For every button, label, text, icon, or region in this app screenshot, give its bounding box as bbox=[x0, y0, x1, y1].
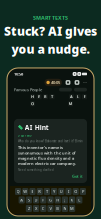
staticText: A bbox=[70, 94, 73, 99]
staticText: S bbox=[28, 197, 30, 203]
staticText: R bbox=[38, 189, 41, 194]
staticText: L bbox=[77, 94, 79, 99]
button[interactable]: L bbox=[76, 196, 82, 203]
staticText: G bbox=[49, 197, 52, 203]
staticText: E bbox=[83, 94, 85, 99]
button[interactable]: Z bbox=[26, 205, 32, 212]
button[interactable]: Q bbox=[15, 188, 21, 195]
staticText: C bbox=[42, 206, 45, 211]
button[interactable]: Got it bbox=[72, 174, 83, 179]
button[interactable]: K bbox=[69, 196, 75, 203]
button[interactable]: N bbox=[62, 205, 68, 212]
button[interactable]: S bbox=[26, 196, 32, 203]
staticText: V bbox=[49, 206, 51, 211]
staticText: L bbox=[78, 197, 80, 203]
staticText: W bbox=[23, 189, 27, 194]
staticText: H bbox=[31, 94, 34, 99]
staticText: U bbox=[60, 189, 63, 194]
button[interactable]: A bbox=[19, 196, 25, 203]
button[interactable]: C bbox=[40, 205, 46, 212]
staticText: Need something clarified bbox=[18, 168, 54, 172]
button[interactable]: More options bbox=[83, 79, 87, 85]
staticText: 10:58 bbox=[14, 71, 23, 77]
staticText: 3 LETTERS bbox=[18, 134, 31, 137]
button[interactable]: T bbox=[44, 188, 50, 195]
staticText: AI Hint bbox=[25, 123, 49, 132]
button[interactable]: V bbox=[47, 205, 54, 212]
button[interactable]: D bbox=[33, 196, 39, 203]
staticText: F bbox=[42, 197, 44, 203]
staticText: D bbox=[35, 197, 38, 203]
staticText: T bbox=[46, 189, 48, 194]
staticText: J bbox=[64, 197, 65, 203]
button[interactable]: E bbox=[29, 188, 36, 195]
staticText: Got it bbox=[72, 174, 83, 179]
staticText: Z bbox=[28, 206, 30, 211]
button[interactable]: X bbox=[33, 205, 39, 212]
button[interactable]: O bbox=[73, 188, 79, 195]
button[interactable]: F bbox=[40, 196, 46, 203]
staticText: This inventor's name is synonymous with … bbox=[18, 145, 76, 166]
staticText: A bbox=[20, 197, 23, 203]
button[interactable]: Share bbox=[74, 79, 80, 85]
staticText: Y bbox=[53, 189, 55, 194]
staticText: M bbox=[70, 206, 74, 211]
staticText: Q bbox=[17, 189, 20, 194]
staticText: Famous People bbox=[14, 87, 42, 92]
button[interactable]: G bbox=[47, 196, 54, 203]
staticText: R bbox=[44, 94, 47, 99]
staticText: I bbox=[68, 189, 69, 194]
button[interactable]: J bbox=[62, 196, 68, 203]
staticText: H bbox=[56, 197, 59, 203]
button[interactable]: M bbox=[69, 205, 75, 212]
button[interactable]: H bbox=[55, 196, 61, 203]
button[interactable]: W bbox=[22, 188, 28, 195]
staticText: O bbox=[74, 189, 77, 194]
staticText: M bbox=[68, 101, 72, 106]
staticText: N bbox=[63, 206, 66, 211]
staticText: T bbox=[51, 94, 53, 99]
staticText: you a nudge. bbox=[11, 41, 89, 57]
staticText: SMART TEXTS bbox=[33, 14, 68, 21]
button[interactable]: Y bbox=[51, 188, 57, 195]
staticText: B bbox=[56, 206, 59, 211]
staticText: 40:05 bbox=[51, 80, 60, 85]
staticText: Stuck? AI gives bbox=[4, 23, 97, 39]
button[interactable]: R bbox=[37, 188, 43, 195]
button[interactable]: P bbox=[80, 188, 86, 195]
button[interactable]: Hint bbox=[65, 79, 71, 85]
button[interactable]: U bbox=[58, 188, 64, 195]
staticText: E bbox=[38, 94, 40, 99]
staticText: E bbox=[31, 189, 33, 194]
staticText: Who do you know? Elaborate and level it?… bbox=[18, 139, 83, 143]
staticText: O bbox=[31, 101, 34, 106]
staticText: K bbox=[71, 197, 74, 203]
staticText: X bbox=[35, 206, 37, 211]
button[interactable]: I bbox=[65, 188, 72, 195]
staticText: P bbox=[82, 189, 84, 194]
button[interactable]: B bbox=[55, 205, 61, 212]
